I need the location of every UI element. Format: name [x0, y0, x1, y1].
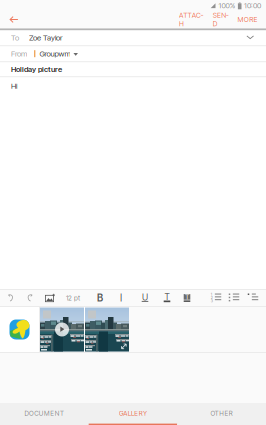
- staticText: Hi: [11, 81, 17, 91]
- button[interactable]: [42, 290, 58, 306]
- staticText: 100%: [218, 1, 235, 10]
- button[interactable]: T: [159, 290, 175, 306]
- staticText: SEND: [213, 11, 228, 28]
- button[interactable]: Open Gallery app: [0, 307, 39, 352]
- button[interactable]: DOCUMENT: [0, 403, 89, 425]
- staticText: 2: [211, 295, 213, 300]
- staticText: Zoe Taylor: [29, 33, 63, 42]
- button[interactable]: ATTACH: [178, 11, 204, 28]
- button[interactable]: MORE: [237, 11, 258, 28]
- button[interactable]: [245, 290, 261, 306]
- staticText: ATTACH: [179, 11, 203, 28]
- staticText: 12 pt: [66, 294, 80, 302]
- staticText: 1: [211, 292, 212, 296]
- staticText: B: [97, 292, 103, 304]
- button[interactable]: To: [0, 30, 266, 45]
- staticText: OTHER: [210, 409, 233, 417]
- button[interactable]: OTHER: [177, 403, 266, 425]
- button[interactable]: T: [179, 290, 195, 306]
- button[interactable]: [22, 290, 38, 306]
- button[interactable]: GALLERY: [89, 403, 177, 425]
- staticText: From: [11, 49, 27, 58]
- button[interactable]: SEND: [211, 11, 230, 28]
- staticText: 3: [211, 299, 213, 303]
- button[interactable]: 1: [208, 290, 224, 306]
- button[interactable]: Harbour video: [40, 307, 84, 352]
- button[interactable]: U: [137, 290, 153, 306]
- button[interactable]: Back: [0, 11, 28, 28]
- staticText: T: [185, 292, 189, 301]
- staticText: T: [164, 291, 169, 302]
- staticText: GALLERY: [119, 409, 147, 417]
- button[interactable]: Holiday picture: [0, 62, 266, 76]
- button[interactable]: [3, 290, 19, 306]
- button[interactable]: Harbour photo: [85, 307, 129, 352]
- staticText: I: [120, 292, 122, 304]
- staticText: To: [11, 33, 19, 42]
- button[interactable]: B: [92, 290, 108, 306]
- button[interactable]: From: [0, 46, 266, 61]
- staticText: MORE: [238, 15, 257, 24]
- staticText: Groupwm: [39, 49, 70, 58]
- button[interactable]: I: [113, 290, 129, 306]
- button[interactable]: 12 pt: [62, 290, 84, 306]
- staticText: DOCUMENT: [25, 409, 64, 417]
- staticText: U: [142, 292, 148, 302]
- staticText: Holiday picture: [11, 65, 62, 74]
- button[interactable]: [226, 290, 242, 306]
- staticText: 10:00: [244, 1, 261, 10]
